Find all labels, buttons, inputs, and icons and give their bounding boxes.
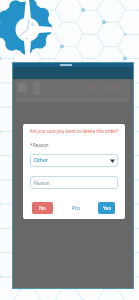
button[interactable]: Reason [30,176,118,189]
button[interactable]: Other [30,154,118,167]
staticText: Pro [72,205,81,212]
staticText: Yes [103,205,111,212]
staticText: Reason [33,142,49,148]
staticText: Other [34,157,48,164]
staticText: Are you sure you want to delete this ord… [26,128,122,134]
staticText: Reason [34,180,50,186]
staticText: Order Cancelled [86,84,122,90]
button[interactable]: No [32,202,53,214]
button[interactable]: Pro [65,202,87,214]
staticText: * [30,142,33,149]
staticText: No [39,205,46,212]
button[interactable]: Yes [98,202,115,214]
